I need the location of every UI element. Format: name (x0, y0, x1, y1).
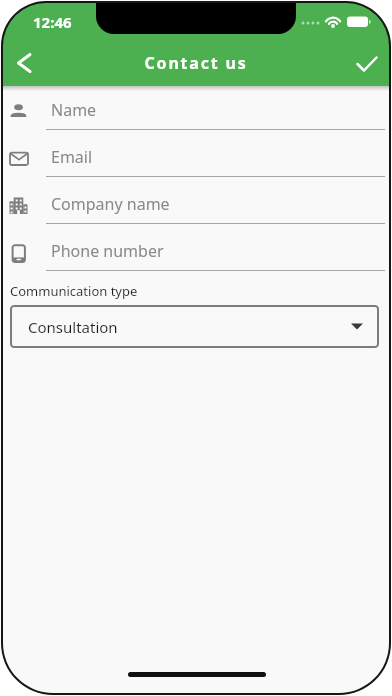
staticText: 12:46 (33, 12, 72, 32)
button[interactable]: Name (2, 95, 390, 142)
button[interactable]: Company name (2, 189, 390, 236)
button[interactable]: Consultation (10, 305, 379, 348)
button[interactable] (8, 47, 40, 79)
button[interactable] (346, 47, 386, 81)
staticText: Consultation (28, 317, 118, 337)
staticText: Communication type (10, 282, 138, 300)
staticText: Phone number (51, 240, 164, 262)
button[interactable]: Phone number (2, 236, 390, 283)
staticText: Company name (51, 193, 170, 215)
button[interactable]: Email (2, 142, 390, 189)
staticText: Name (51, 99, 97, 121)
staticText: Contact us (2, 52, 390, 74)
staticText: Email (51, 146, 93, 168)
